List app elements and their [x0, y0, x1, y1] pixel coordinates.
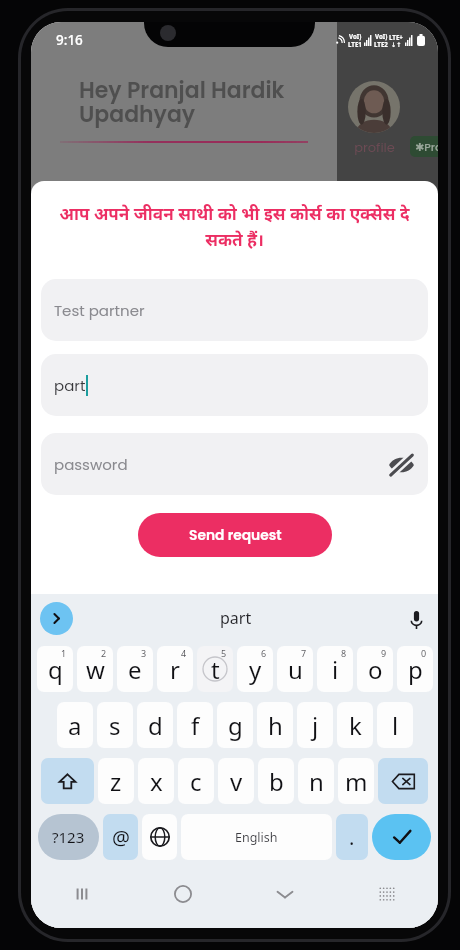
button[interactable]: Send request	[138, 513, 332, 557]
button[interactable]: Hide keyboard	[234, 860, 336, 928]
button[interactable]: x	[138, 758, 174, 804]
staticText: k	[349, 709, 362, 742]
button[interactable]: t	[197, 646, 233, 692]
staticText: m	[345, 765, 368, 798]
staticText: LTE2	[374, 40, 388, 48]
button[interactable]: y	[237, 646, 273, 692]
staticText: ↓↑	[391, 41, 402, 48]
staticText: 4	[181, 647, 187, 659]
staticText: f	[191, 709, 200, 742]
staticText: 0	[421, 647, 427, 659]
button[interactable]: u	[277, 646, 313, 692]
staticText: profile	[354, 138, 395, 156]
staticText: o	[368, 653, 383, 686]
staticText: y	[249, 653, 262, 686]
other: Keyboard layout	[379, 886, 395, 902]
staticText: c	[190, 765, 202, 798]
button[interactable]: Profile	[348, 81, 400, 133]
button[interactable]: c	[178, 758, 214, 804]
staticText: h	[268, 709, 283, 742]
button[interactable]: part	[41, 354, 428, 416]
button[interactable]: a	[57, 702, 93, 748]
staticText: VoI)	[349, 32, 362, 40]
button[interactable]: b	[258, 758, 294, 804]
staticText: q	[48, 653, 63, 686]
button[interactable]: z	[98, 758, 134, 804]
button[interactable]: w	[77, 646, 113, 692]
button[interactable]: Home	[132, 860, 234, 928]
staticText: p	[408, 653, 423, 686]
staticText: 9	[381, 647, 387, 659]
button[interactable]: r	[157, 646, 193, 692]
button[interactable]: Keyboard layout	[336, 860, 438, 928]
button[interactable]: g	[217, 702, 253, 748]
button[interactable]: Backspace	[378, 758, 428, 804]
button[interactable]: i	[317, 646, 353, 692]
staticText: 1	[61, 647, 67, 659]
button[interactable]: p	[397, 646, 433, 692]
button[interactable]: Shift	[41, 758, 94, 804]
staticText: ?123	[52, 827, 85, 847]
button[interactable]: m	[338, 758, 374, 804]
other: Hide keyboard	[274, 883, 296, 905]
staticText: x	[150, 765, 163, 798]
staticText: a	[68, 709, 82, 742]
button[interactable]: f	[177, 702, 213, 748]
button[interactable]: Voice input	[398, 602, 434, 638]
button[interactable]: Recents	[31, 860, 132, 928]
button[interactable]: Language	[142, 814, 177, 860]
staticText: part	[220, 607, 252, 629]
staticText: 5	[221, 647, 227, 659]
button[interactable]: .	[336, 814, 368, 860]
button[interactable]: j	[297, 702, 333, 748]
button[interactable]: English	[181, 814, 332, 860]
staticText: .	[349, 824, 355, 851]
button[interactable]: Enter	[372, 814, 431, 860]
staticText: 8	[341, 647, 347, 659]
staticText: z	[110, 765, 122, 798]
button[interactable]: ?123	[38, 814, 99, 860]
staticText: t	[211, 653, 220, 686]
button[interactable]: Test partner	[41, 279, 428, 341]
staticText: Send request	[189, 526, 282, 545]
staticText: English	[235, 829, 278, 846]
staticText: 6	[261, 647, 267, 659]
button[interactable]: k	[337, 702, 373, 748]
staticText: b	[269, 765, 284, 798]
button[interactable]: o	[357, 646, 393, 692]
staticText: आप अपने जीवन साथी को भी इस कोर्स का एक्स…	[47, 202, 422, 251]
button[interactable]: ✱Pro	[410, 136, 438, 157]
staticText: e	[128, 653, 142, 686]
staticText: w	[86, 653, 105, 686]
staticText: LTE1	[348, 40, 362, 48]
staticText: 2	[101, 647, 107, 659]
staticText: l	[392, 709, 399, 742]
staticText: 7	[301, 647, 307, 659]
staticText: Hey Pranjal Hardik Upadhyay	[79, 75, 285, 129]
staticText: 3	[141, 647, 147, 659]
button[interactable]: v	[218, 758, 254, 804]
staticText: v	[230, 765, 243, 798]
button[interactable]: password	[41, 433, 428, 495]
button[interactable]: l	[377, 702, 413, 748]
staticText: part	[54, 375, 86, 396]
button[interactable]: Expand toolbar	[40, 602, 73, 635]
button[interactable]: d	[137, 702, 173, 748]
button[interactable]: h	[257, 702, 293, 748]
staticText: @	[112, 824, 130, 851]
button[interactable]: s	[97, 702, 133, 748]
button[interactable]: e	[117, 646, 153, 692]
staticText: Test partner	[54, 300, 145, 321]
staticText: ✱Pro	[415, 139, 438, 154]
staticText: n	[309, 765, 324, 798]
staticText: d	[148, 709, 163, 742]
other: Show password	[388, 451, 415, 478]
button[interactable]: @	[103, 814, 138, 860]
other: Recents	[72, 884, 92, 904]
other: Home	[174, 885, 192, 903]
staticText: password	[54, 454, 128, 475]
staticText: u	[288, 653, 303, 686]
staticText: s	[109, 709, 121, 742]
button[interactable]: n	[298, 758, 334, 804]
button[interactable]: q	[37, 646, 73, 692]
